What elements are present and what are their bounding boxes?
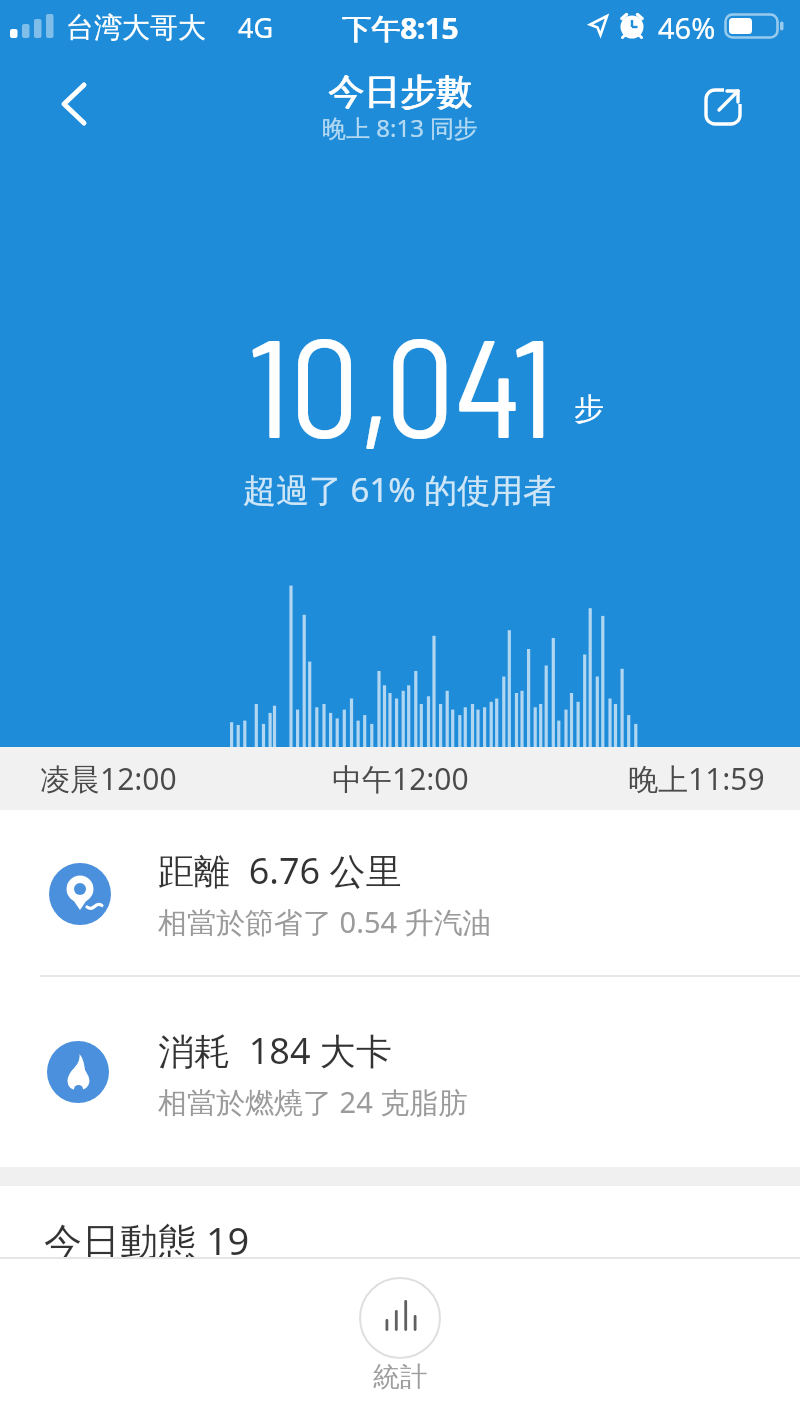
- staticText: 今日步數: [328, 69, 472, 114]
- button[interactable]: [694, 74, 754, 134]
- staticText: 消耗 184 大卡: [158, 1026, 392, 1074]
- staticText: 距離 6.76 公里: [158, 846, 402, 894]
- staticText: 中午12:00: [332, 758, 469, 799]
- button[interactable]: 統計: [358, 1277, 442, 1413]
- button[interactable]: 消耗 184 大卡: [0, 977, 800, 1167]
- staticText: 10,041: [248, 300, 554, 466]
- staticText: 相當於節省了 0.54 升汽油: [158, 902, 492, 942]
- staticText: 超過了 61% 的使用者: [243, 467, 557, 512]
- staticText: 台湾大哥大: [66, 10, 206, 45]
- staticText: 下午8:15: [342, 8, 458, 46]
- staticText: 46%: [658, 8, 716, 46]
- staticText: 今日動態 19: [44, 1214, 250, 1266]
- button[interactable]: 距離 6.76 公里: [0, 810, 800, 975]
- staticText: 相當於燃燒了 24 克脂肪: [158, 1082, 468, 1122]
- button[interactable]: [44, 74, 104, 134]
- staticText: 晚上11:59: [628, 758, 765, 799]
- staticText: 今日步數: [329, 69, 473, 114]
- staticText: 4G: [238, 9, 274, 46]
- staticText: 步: [574, 390, 604, 428]
- staticText: 下午8:15: [343, 8, 459, 46]
- staticText: 晚上 8:13 同步: [322, 111, 479, 144]
- staticText: 統計: [373, 1360, 427, 1394]
- staticText: 凌晨12:00: [40, 758, 177, 799]
